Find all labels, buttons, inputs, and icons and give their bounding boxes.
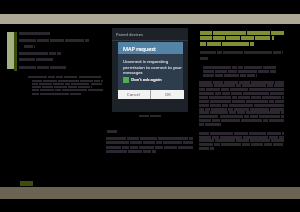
staticText: MAP request [123, 45, 157, 52]
staticText: Don't ask again [129, 77, 162, 83]
staticText: Uconnect is requesting permission to con… [123, 59, 182, 75]
staticText: OK [165, 92, 171, 98]
staticText: Cancel [127, 92, 141, 98]
staticText: Paired devices [116, 32, 143, 37]
